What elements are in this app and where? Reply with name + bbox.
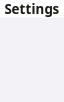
staticText: Settings: [4, 0, 59, 18]
